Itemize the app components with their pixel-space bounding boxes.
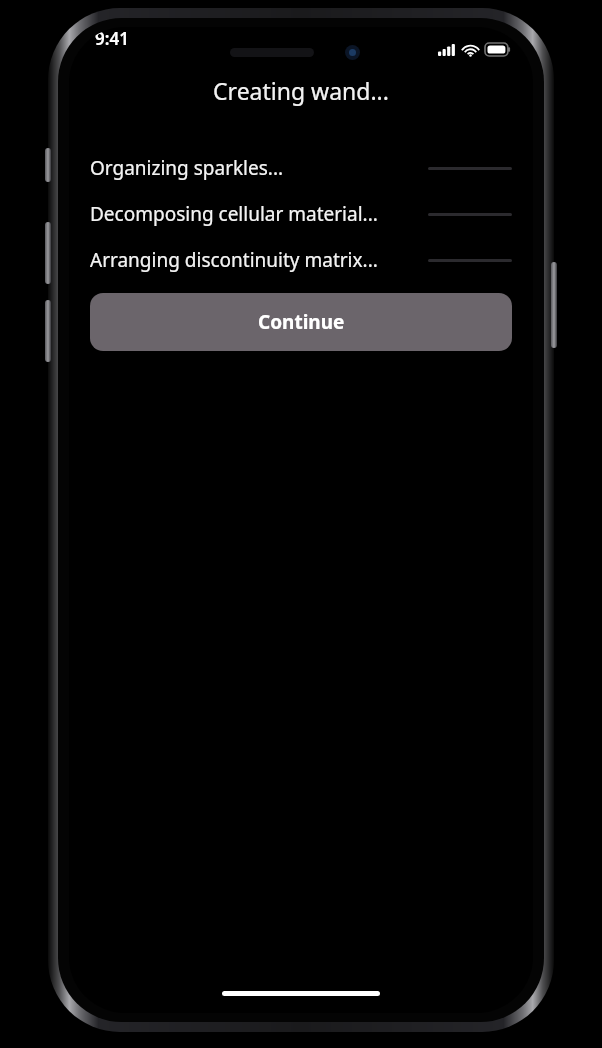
staticText: 9:41 — [95, 27, 129, 50]
staticText: Arranging discontinuity matrix... — [90, 247, 378, 273]
staticText: Continue — [258, 309, 345, 335]
staticText: Decomposing cellular material... — [90, 201, 378, 227]
staticText: Organizing sparkles... — [90, 155, 284, 181]
button[interactable]: Continue — [90, 293, 512, 351]
staticText: Creating wand... — [69, 75, 533, 106]
